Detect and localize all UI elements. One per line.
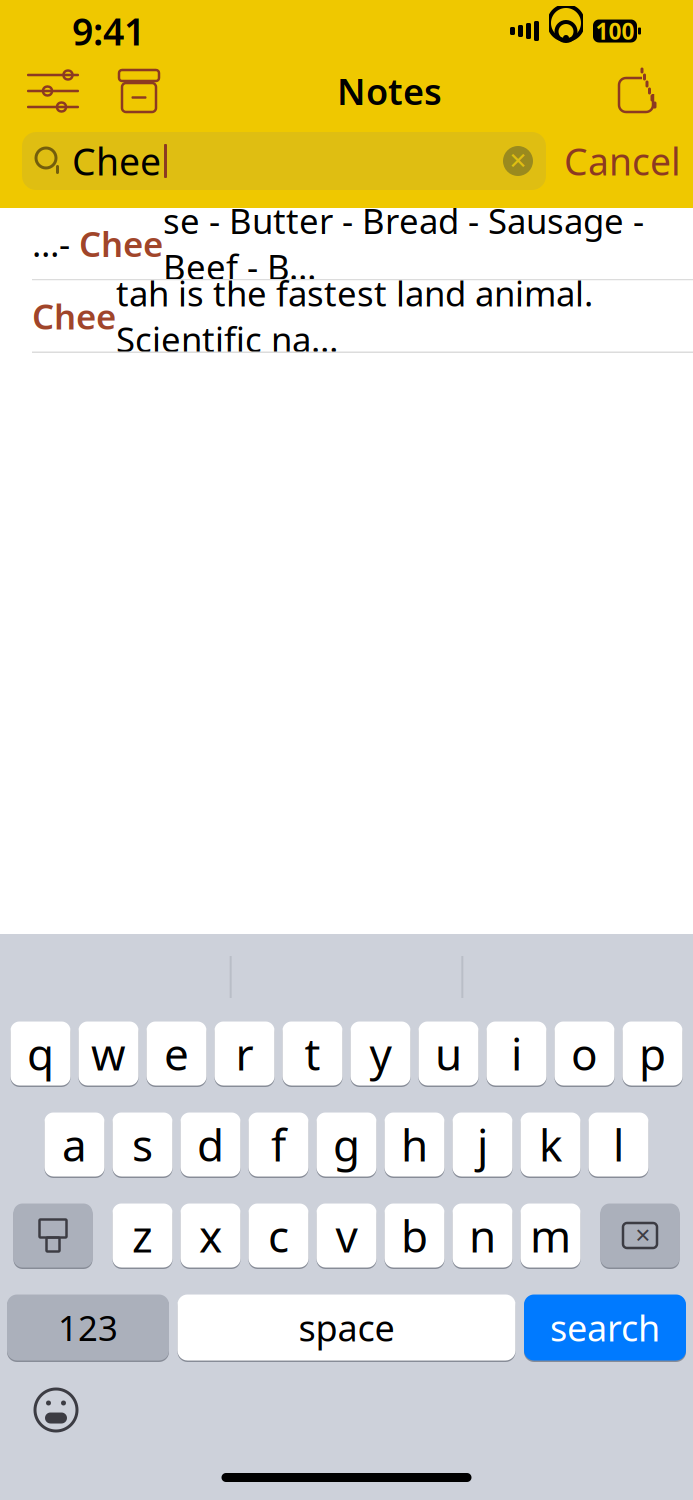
button[interactable]: p <box>622 1020 682 1087</box>
button[interactable]: v <box>316 1202 376 1269</box>
button[interactable]: Cancel <box>546 132 691 190</box>
staticText: l <box>613 1115 624 1174</box>
staticText: …- <box>32 220 79 266</box>
staticText: Cancel <box>564 136 681 186</box>
staticText: search <box>550 1304 660 1351</box>
staticText: z <box>132 1206 153 1265</box>
staticText: ✕ <box>634 1224 651 1247</box>
button[interactable]: 123 <box>7 1293 169 1362</box>
staticText: 100 <box>595 16 634 46</box>
staticText: ✕ <box>508 148 527 174</box>
staticText: h <box>401 1115 428 1174</box>
button[interactable]: k <box>520 1111 580 1178</box>
staticText: y <box>369 1024 391 1083</box>
button[interactable]: d <box>180 1111 240 1178</box>
button[interactable]: o <box>554 1020 614 1087</box>
staticText: q <box>27 1024 54 1083</box>
staticText: e <box>164 1024 189 1083</box>
staticText: u <box>435 1024 462 1083</box>
staticText: n <box>469 1206 496 1265</box>
staticText: tah is the fastest land animal. Scientif… <box>116 270 602 362</box>
button[interactable]: j <box>452 1111 512 1178</box>
staticText: d <box>197 1115 224 1174</box>
staticText: c <box>268 1206 289 1265</box>
button[interactable]: e <box>146 1020 206 1087</box>
staticText: Notes <box>337 67 442 115</box>
staticText: v <box>335 1206 357 1265</box>
button[interactable]: Chee <box>0 280 693 353</box>
button[interactable]: Search field <box>22 132 546 190</box>
staticText: r <box>235 1024 253 1083</box>
button[interactable]: q <box>10 1020 70 1087</box>
button[interactable]: Emoji <box>24 1380 88 1440</box>
button[interactable]: w <box>78 1020 138 1087</box>
button[interactable]: a <box>44 1111 104 1178</box>
staticText: j <box>477 1115 488 1174</box>
staticText: o <box>571 1024 598 1083</box>
button[interactable]: f <box>248 1111 308 1178</box>
staticText: p <box>639 1024 666 1083</box>
staticText: s <box>132 1115 153 1174</box>
button[interactable]: h <box>384 1111 444 1178</box>
staticText: Chee <box>72 136 161 186</box>
button[interactable]: Delete <box>600 1202 679 1269</box>
staticText: 9:41 <box>72 6 145 56</box>
button[interactable]: x <box>180 1202 240 1269</box>
button[interactable]: r <box>214 1020 274 1087</box>
button[interactable]: c <box>248 1202 308 1269</box>
button[interactable]: t <box>282 1020 342 1087</box>
button[interactable]: Clear text <box>496 139 540 183</box>
button[interactable]: l <box>588 1111 648 1178</box>
staticText: space <box>298 1304 394 1351</box>
button[interactable]: View options <box>22 65 84 117</box>
staticText: b <box>401 1206 428 1265</box>
staticText: t <box>304 1024 320 1083</box>
button[interactable]: Archive <box>108 65 170 117</box>
staticText: g <box>333 1115 360 1174</box>
staticText: Chee <box>32 293 116 339</box>
staticText: f <box>271 1115 286 1174</box>
button[interactable]: …- <box>0 208 693 280</box>
staticText: w <box>91 1024 126 1083</box>
staticText: m <box>530 1206 571 1265</box>
button[interactable]: New Note <box>609 65 671 117</box>
button[interactable]: z <box>112 1202 172 1269</box>
staticText: k <box>539 1115 562 1174</box>
button[interactable]: search <box>524 1293 686 1362</box>
staticText: x <box>199 1206 222 1265</box>
button[interactable]: i <box>486 1020 546 1087</box>
staticText: i <box>511 1024 522 1083</box>
button[interactable]: u <box>418 1020 478 1087</box>
staticText: 123 <box>58 1304 118 1350</box>
staticText: Chee <box>79 220 163 266</box>
staticText: a <box>62 1115 87 1174</box>
button[interactable]: y <box>350 1020 410 1087</box>
button[interactable]: n <box>452 1202 512 1269</box>
button[interactable]: s <box>112 1111 172 1178</box>
staticText: se - Butter - Bread - Sausage - Beef - B… <box>163 197 644 290</box>
button[interactable]: space <box>177 1293 515 1362</box>
button[interactable]: m <box>520 1202 580 1269</box>
button[interactable]: Shift <box>13 1202 92 1269</box>
button[interactable]: g <box>316 1111 376 1178</box>
button[interactable]: b <box>384 1202 444 1269</box>
